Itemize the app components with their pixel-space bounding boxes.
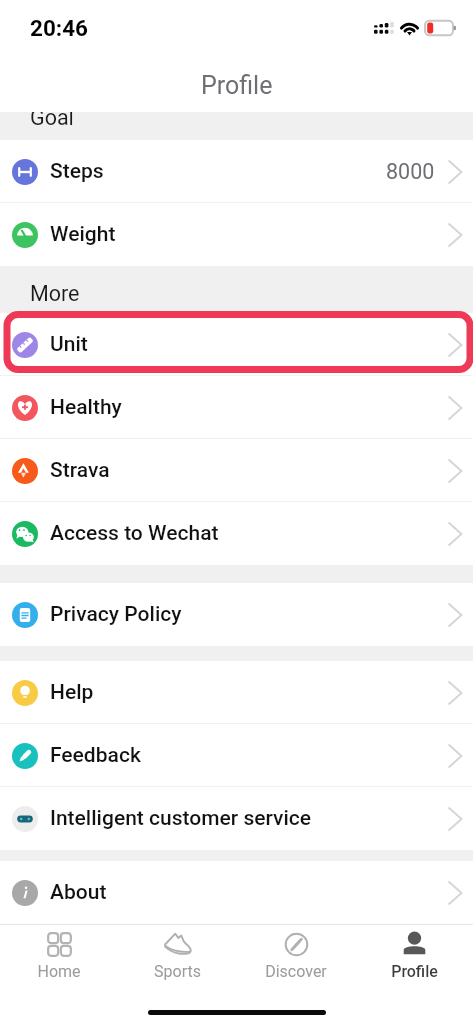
- staticText: Feedback: [50, 743, 141, 768]
- button[interactable]: Access to Wechat: [0, 502, 473, 565]
- button[interactable]: Home: [0, 924, 118, 981]
- button[interactable]: Healthy: [0, 376, 473, 439]
- staticText: Goal: [30, 112, 74, 130]
- other: Discover: [283, 931, 310, 958]
- staticText: Home: [37, 962, 81, 981]
- button[interactable]: Steps: [0, 140, 473, 203]
- staticText: About: [50, 880, 107, 905]
- other: Home: [46, 931, 73, 958]
- staticText: Profile: [391, 962, 438, 981]
- button[interactable]: Unit: [0, 313, 473, 376]
- button[interactable]: About: [0, 861, 473, 924]
- staticText: Sports: [154, 962, 201, 981]
- staticText: Weight: [50, 222, 116, 247]
- button[interactable]: Strava: [0, 439, 473, 502]
- staticText: Help: [50, 680, 94, 705]
- staticText: Access to Wechat: [50, 521, 219, 546]
- other: Sports: [164, 931, 191, 958]
- other: Profile: [401, 931, 428, 958]
- button[interactable]: Privacy Policy: [0, 583, 473, 646]
- button[interactable]: Profile: [355, 924, 473, 981]
- staticText: 8000: [386, 159, 435, 184]
- staticText: Discover: [265, 962, 327, 981]
- staticText: Profile: [201, 71, 273, 100]
- staticText: Healthy: [50, 395, 122, 420]
- button[interactable]: Feedback: [0, 724, 473, 787]
- staticText: 20:46: [30, 15, 88, 41]
- button[interactable]: Help: [0, 661, 473, 724]
- staticText: Steps: [50, 159, 104, 184]
- staticText: Privacy Policy: [50, 602, 182, 627]
- button[interactable]: Intelligent customer service: [0, 787, 473, 850]
- staticText: Strava: [50, 458, 110, 483]
- button[interactable]: Discover: [237, 924, 355, 981]
- staticText: More: [30, 281, 80, 306]
- staticText: Unit: [50, 332, 88, 357]
- staticText: Intelligent customer service: [50, 806, 312, 831]
- button[interactable]: Weight: [0, 203, 473, 266]
- button[interactable]: Sports: [118, 924, 236, 981]
